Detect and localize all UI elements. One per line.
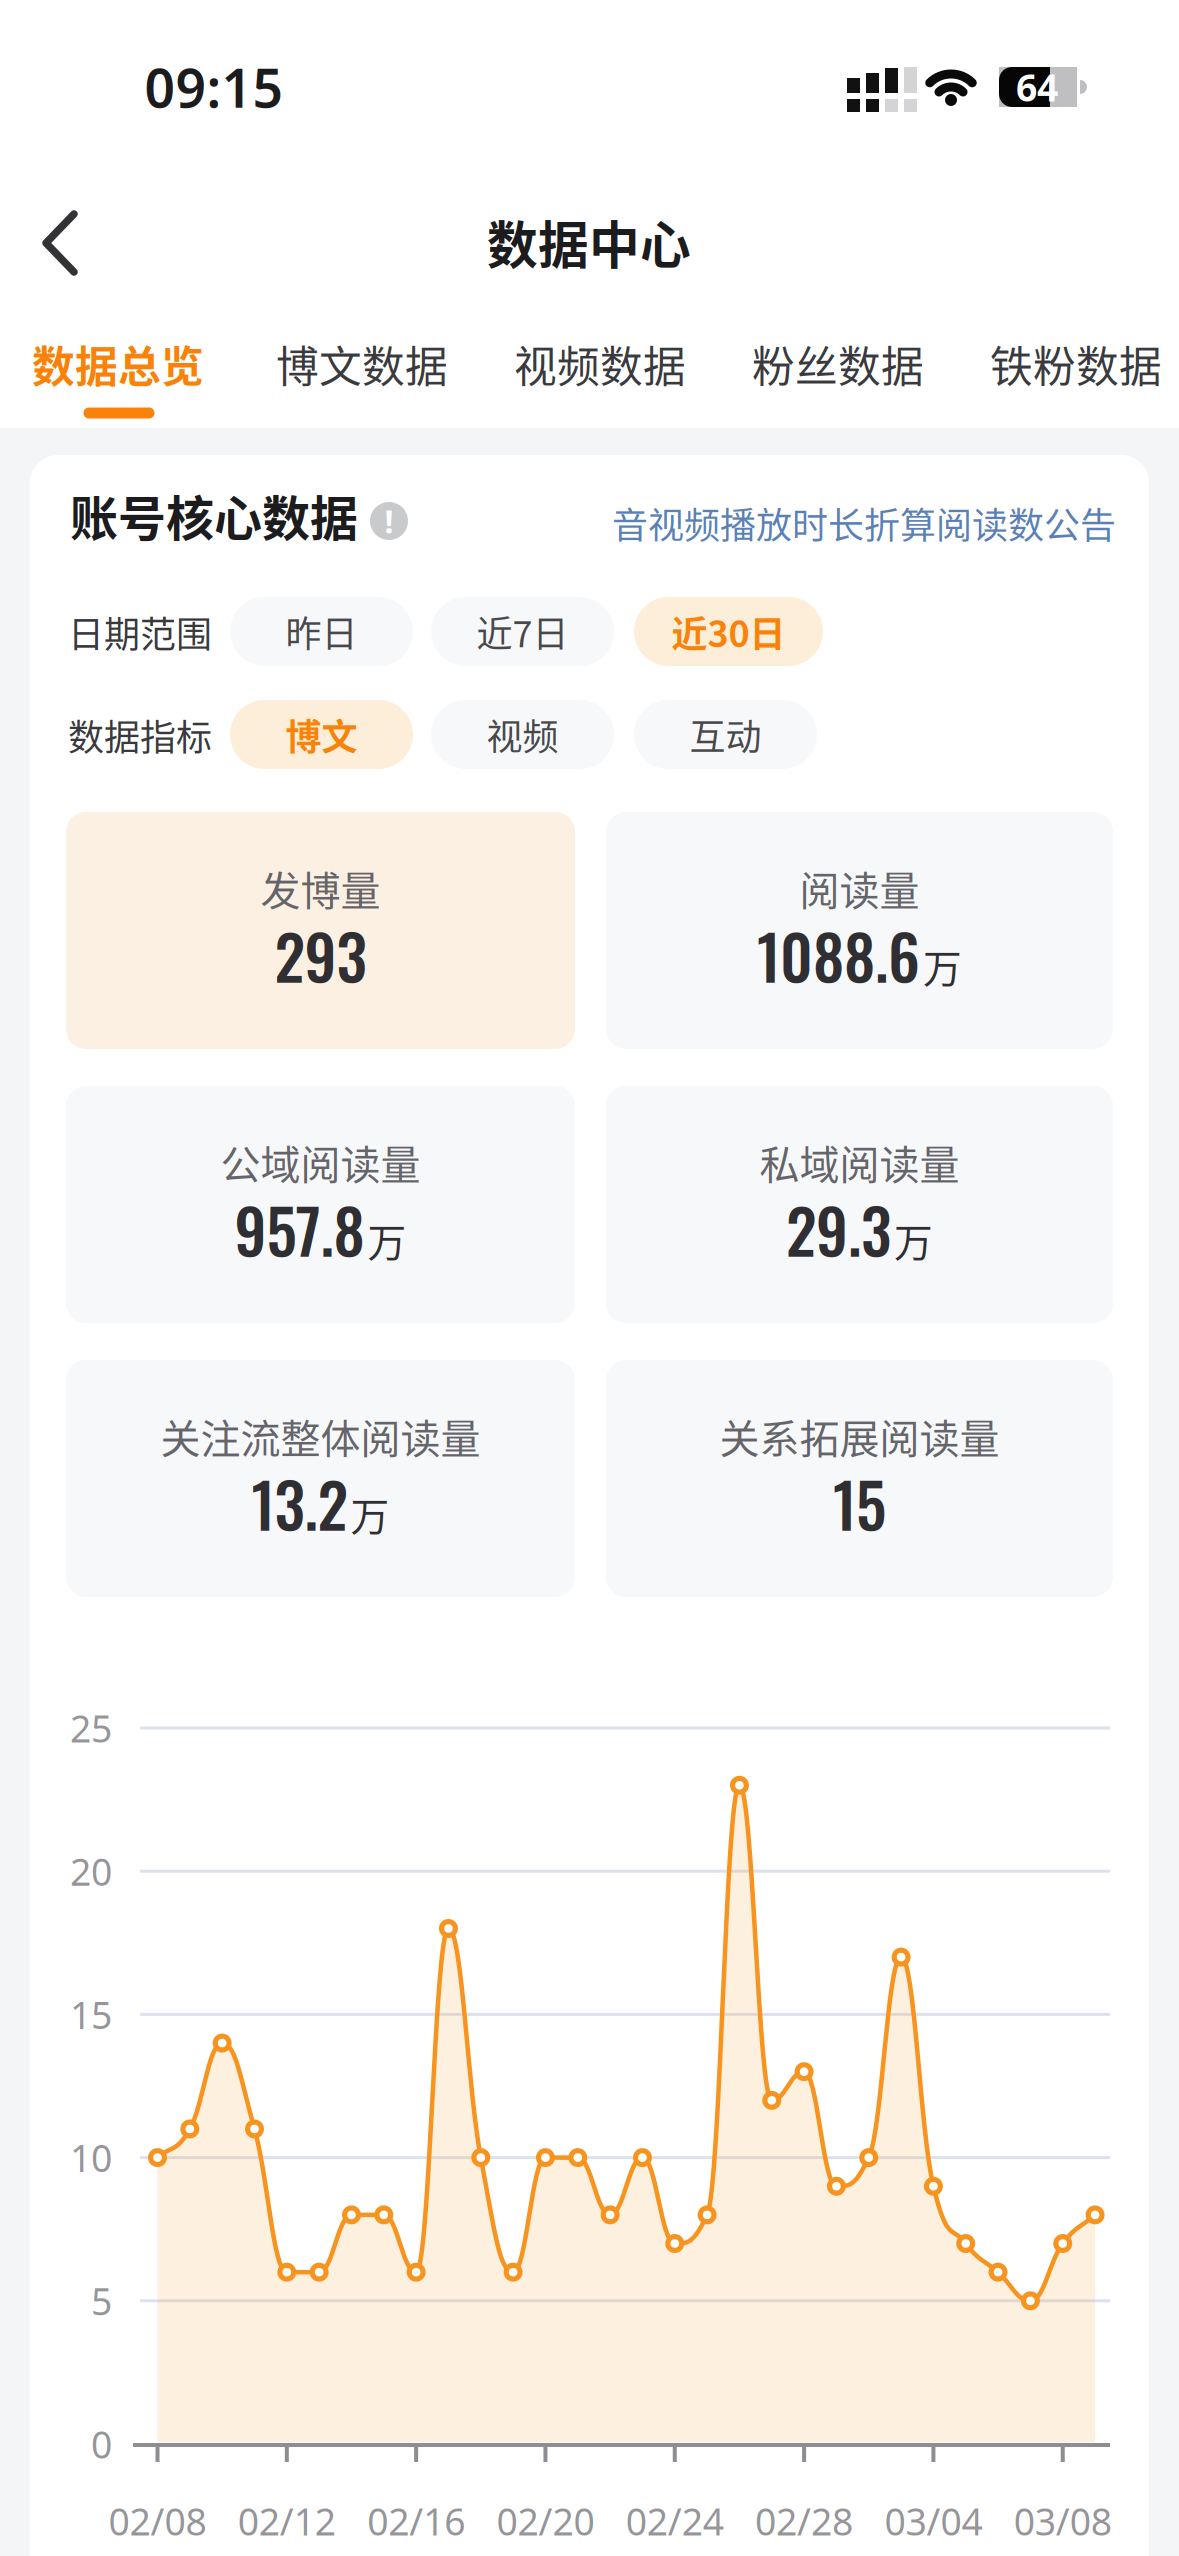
staticText: 13.2	[251, 1458, 347, 1548]
staticText: 万	[350, 1486, 389, 1542]
staticText: 粉丝数据	[752, 333, 924, 395]
button[interactable]: 音视频播放时长折算阅读数公告	[556, 497, 1116, 549]
staticText: 20	[70, 1846, 112, 1896]
button[interactable]: 阅读量	[606, 812, 1113, 1049]
staticText: 数据中心	[487, 205, 691, 279]
staticText: 02/16	[367, 2496, 465, 2546]
button[interactable]: 博文	[230, 700, 413, 769]
staticText: 视频	[486, 708, 558, 760]
staticText: 02/20	[496, 2496, 594, 2546]
button[interactable]: 昨日	[230, 597, 413, 666]
staticText: 02/12	[238, 2496, 336, 2546]
staticText: 数据总览	[32, 333, 204, 395]
button[interactable]: 视频数据	[500, 329, 700, 399]
button[interactable]: 发博量	[66, 812, 575, 1049]
staticText: 15	[833, 1458, 886, 1548]
staticText: 02/28	[755, 2496, 853, 2546]
staticText: 29.3	[786, 1184, 891, 1274]
staticText: 昨日	[285, 605, 357, 657]
staticText: 日期范围	[68, 606, 212, 658]
staticText: 博文	[285, 708, 357, 760]
staticText: 互动	[689, 708, 761, 760]
button[interactable]: 博文数据	[262, 329, 462, 399]
staticText: 957.8	[234, 1184, 364, 1274]
staticText: 关注流整体阅读量	[160, 1407, 480, 1465]
staticText: 0	[91, 2419, 112, 2469]
staticText: 64	[1016, 62, 1058, 112]
staticText: 03/08	[1014, 2496, 1112, 2546]
button[interactable]: 互动	[634, 700, 817, 769]
staticText: 万	[367, 1212, 406, 1268]
staticText: 公域阅读量	[220, 1133, 420, 1191]
button[interactable]: 关注流整体阅读量	[66, 1360, 575, 1597]
button[interactable]: 粉丝数据	[738, 329, 938, 399]
staticText: 293	[274, 910, 366, 1000]
staticText: 02/24	[626, 2496, 724, 2546]
button[interactable]: 公域阅读量	[66, 1086, 575, 1323]
staticText: 万	[923, 938, 962, 994]
staticText: 10	[70, 2133, 112, 2182]
staticText: 03/04	[884, 2496, 982, 2546]
button[interactable]: Back	[30, 213, 90, 273]
button[interactable]: 私域阅读量	[606, 1086, 1113, 1323]
staticText: 私域阅读量	[759, 1133, 959, 1191]
staticText: 阅读量	[799, 859, 919, 917]
staticText: 近30日	[671, 605, 785, 657]
staticText: 25	[70, 1703, 112, 1753]
staticText: 万	[894, 1212, 933, 1268]
staticText: 音视频播放时长折算阅读数公告	[612, 497, 1116, 549]
button[interactable]: 数据总览	[18, 329, 218, 399]
button[interactable]: 近30日	[634, 597, 823, 666]
staticText: !	[384, 500, 393, 542]
staticText: 09:15	[144, 52, 283, 122]
staticText: 发博量	[260, 859, 380, 917]
button[interactable]: 视频	[431, 700, 614, 769]
staticText: 近7日	[476, 605, 568, 657]
staticText: 铁粉数据	[990, 333, 1162, 395]
staticText: 5	[91, 2276, 112, 2326]
button[interactable]: 关系拓展阅读量	[606, 1360, 1113, 1597]
staticText: 博文数据	[276, 333, 448, 395]
staticText: 15	[70, 1990, 112, 2039]
staticText: 关系拓展阅读量	[719, 1407, 999, 1465]
staticText: 账号核心数据	[70, 480, 358, 550]
button[interactable]: About these metrics	[370, 502, 408, 540]
button[interactable]: 近7日	[431, 597, 614, 666]
button[interactable]: 铁粉数据	[976, 329, 1176, 399]
staticText: 视频数据	[514, 333, 686, 395]
staticText: 数据指标	[68, 709, 212, 761]
staticText: 1088.6	[757, 910, 920, 1000]
staticText: 02/08	[108, 2496, 206, 2546]
